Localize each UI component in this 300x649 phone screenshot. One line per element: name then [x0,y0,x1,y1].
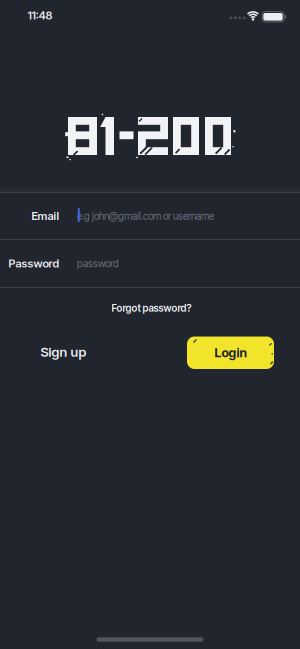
staticText: Password [8,257,59,270]
button[interactable]: Email [0,192,300,239]
staticText: Login [214,345,246,360]
staticText: Email [31,209,59,223]
staticText: e.g john@gmail.com or username [77,210,214,222]
staticText: 11:48 [27,9,52,22]
staticText: Sign up [40,344,86,360]
button[interactable]: Sign up [40,344,86,360]
button[interactable]: Login [187,336,274,369]
staticText: password [77,257,119,270]
button[interactable]: Forgot password? [111,302,191,314]
button[interactable]: Password [0,240,300,287]
staticText: Forgot password? [111,302,191,314]
